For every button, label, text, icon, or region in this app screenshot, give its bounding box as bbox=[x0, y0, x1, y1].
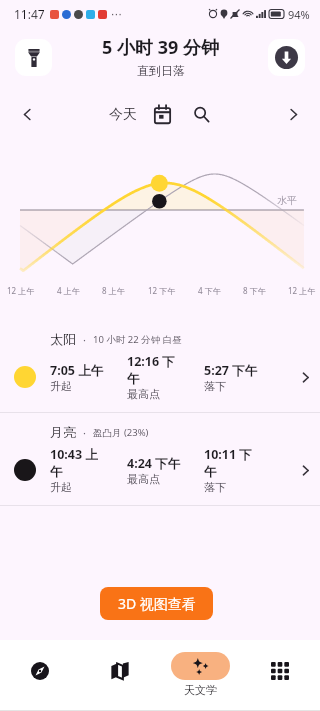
staticText: 8 下午 bbox=[243, 285, 266, 296]
button[interactable]: Search bbox=[189, 102, 213, 126]
staticText: 月亮 bbox=[50, 424, 76, 440]
staticText: 升起 bbox=[50, 480, 72, 494]
button[interactable]: Next day bbox=[278, 99, 308, 129]
staticText: 10:43 上午 bbox=[50, 446, 108, 480]
button[interactable]: 天文学 bbox=[160, 640, 240, 708]
staticText: 8 上午 bbox=[102, 285, 125, 296]
staticText: · bbox=[83, 332, 86, 347]
staticText: 94% bbox=[288, 7, 310, 22]
staticText: 最高点 bbox=[127, 472, 160, 486]
staticText: 盈凸月 (23%) bbox=[93, 426, 149, 439]
button[interactable]: Compass bbox=[0, 640, 80, 708]
button[interactable]: Flashlight bbox=[15, 39, 52, 76]
button[interactable]: 太阳 bbox=[0, 320, 320, 412]
staticText: 太阳 bbox=[50, 331, 76, 347]
staticText: 5:27 下午 bbox=[204, 362, 262, 379]
staticText: 4 下午 bbox=[198, 285, 221, 296]
staticText: 5 小时 39 分钟 bbox=[102, 35, 219, 60]
staticText: ⋯ bbox=[111, 8, 122, 21]
staticText: 12 上午 bbox=[288, 285, 316, 296]
staticText: 12:16 下午 bbox=[127, 353, 185, 387]
button[interactable]: Apps bbox=[240, 640, 320, 708]
button[interactable]: 今天 bbox=[109, 105, 171, 124]
staticText: 直到日落 bbox=[137, 63, 185, 78]
staticText: 水平 bbox=[277, 194, 297, 207]
staticText: 4:24 下午 bbox=[127, 455, 185, 472]
button[interactable]: Download bbox=[268, 39, 305, 76]
staticText: 10 小时 22 分钟 白昼 bbox=[93, 333, 182, 346]
button[interactable]: Previous day bbox=[12, 99, 42, 129]
staticText: 落下 bbox=[204, 480, 226, 494]
staticText: 11:47 bbox=[14, 6, 45, 22]
staticText: 4 上午 bbox=[57, 285, 80, 296]
staticText: · bbox=[83, 425, 86, 440]
staticText: 今天 bbox=[109, 106, 137, 124]
staticText: 7:05 上午 bbox=[50, 362, 108, 379]
staticText: 天文学 bbox=[184, 683, 217, 697]
staticText: 最高点 bbox=[127, 387, 160, 401]
staticText: 10:11 下午 bbox=[204, 446, 262, 480]
button[interactable]: 3D 视图查看 bbox=[100, 587, 213, 620]
button[interactable]: Map bbox=[80, 640, 160, 708]
staticText: 12 上午 bbox=[7, 285, 35, 296]
button[interactable]: 月亮 bbox=[0, 413, 320, 505]
staticText: 12 下午 bbox=[148, 285, 176, 296]
staticText: 升起 bbox=[50, 379, 72, 393]
staticText: 落下 bbox=[204, 379, 226, 393]
staticText: 3D 视图查看 bbox=[118, 594, 196, 613]
